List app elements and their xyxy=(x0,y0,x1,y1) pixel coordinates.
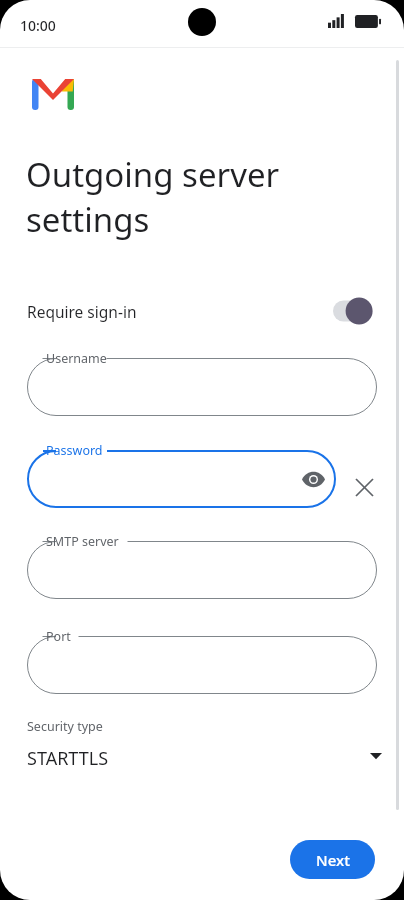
button[interactable]: Security type xyxy=(0,718,404,784)
button[interactable]: Clear password xyxy=(347,470,381,504)
staticText: SMTP server xyxy=(46,533,119,550)
button[interactable]: Show password xyxy=(296,462,330,496)
button[interactable]: Require sign-in toggle xyxy=(333,297,380,325)
staticText: Security type xyxy=(27,718,103,735)
button[interactable]: Password xyxy=(27,450,336,508)
button[interactable]: Next xyxy=(290,840,375,879)
other: Gmail xyxy=(32,79,74,110)
button[interactable]: SMTP server xyxy=(27,541,377,599)
button[interactable]: Username xyxy=(27,358,377,416)
staticText: STARTTLS xyxy=(27,746,109,771)
button[interactable]: Require sign-in xyxy=(0,290,404,332)
staticText: Next xyxy=(316,850,350,870)
staticText: Outgoing server settings xyxy=(26,152,280,242)
staticText: Port xyxy=(46,628,71,645)
staticText: Require sign-in xyxy=(27,301,137,322)
staticText: Username xyxy=(46,350,107,367)
staticText: Password xyxy=(46,442,103,459)
staticText: 10:00 xyxy=(20,16,56,35)
button[interactable]: Port xyxy=(27,636,377,694)
